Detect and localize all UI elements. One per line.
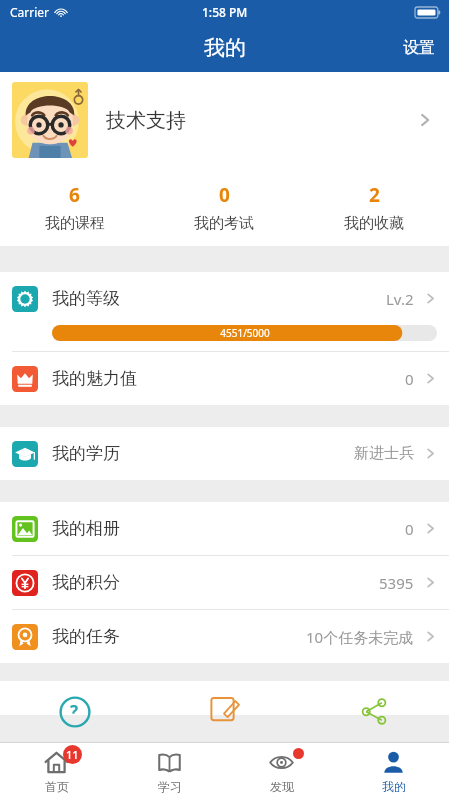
staticText: 我的考试: [194, 214, 254, 233]
staticText: 我的魅力值: [52, 368, 137, 389]
staticText: 学习: [158, 779, 182, 794]
staticText: 发现: [270, 779, 294, 794]
button[interactable]: 6: [0, 168, 149, 246]
staticText: 我的相册: [52, 518, 120, 539]
staticText: 1:58 PM: [202, 4, 248, 20]
staticText: 11: [66, 747, 79, 762]
staticText: 我的学历: [52, 443, 120, 464]
button[interactable]: 0: [149, 168, 299, 246]
staticText: Lv.2: [386, 289, 414, 309]
staticText: 我的收藏: [344, 214, 404, 233]
staticText: ?: [70, 700, 79, 715]
button[interactable]: 2: [299, 168, 449, 246]
staticText: 我的任务: [52, 626, 120, 647]
button[interactable]: 我的任务: [0, 610, 449, 663]
button[interactable]: 我的魅力值: [0, 352, 449, 405]
button[interactable]: 反馈: [149, 681, 299, 715]
staticText: 2: [369, 182, 380, 208]
button[interactable]: 我的学历: [0, 427, 449, 480]
staticText: Carrier: [10, 4, 50, 20]
button[interactable]: 11: [0, 743, 113, 800]
button[interactable]: 发现: [225, 743, 337, 800]
staticText: 我的: [382, 779, 406, 794]
staticText: 技术支持: [106, 108, 186, 133]
button[interactable]: 我的积分: [0, 556, 449, 609]
button[interactable]: 我的: [337, 743, 449, 800]
staticText: 0: [219, 182, 230, 208]
button[interactable]: 学习: [113, 743, 225, 800]
staticText: 5395: [379, 573, 414, 593]
staticText: 我的等级: [52, 288, 120, 309]
staticText: 我的积分: [52, 572, 120, 593]
button[interactable]: 我的等级: [0, 272, 449, 325]
staticText: 10个任务未完成: [306, 627, 414, 647]
staticText: 首页: [45, 779, 69, 794]
button[interactable]: 设置: [389, 28, 449, 68]
staticText: 6: [69, 182, 80, 208]
staticText: 我的课程: [45, 214, 105, 233]
staticText: 设置: [403, 38, 435, 58]
staticText: 4551/5000: [220, 326, 270, 340]
staticText: 新进士兵: [354, 444, 414, 463]
staticText: 0: [405, 369, 414, 389]
staticText: 我的: [204, 35, 246, 61]
button[interactable]: 我的相册: [0, 502, 449, 555]
button[interactable]: 分享: [299, 681, 449, 715]
button[interactable]: 帮助: [0, 681, 149, 715]
button[interactable]: 技术支持: [0, 72, 449, 168]
staticText: 0: [405, 519, 414, 539]
